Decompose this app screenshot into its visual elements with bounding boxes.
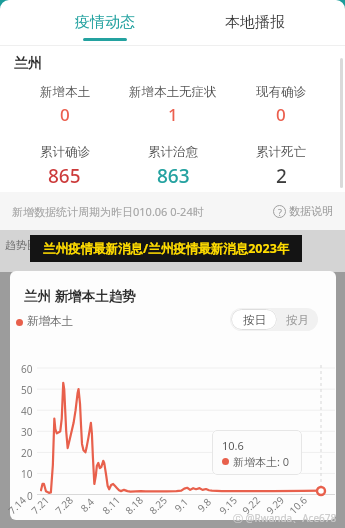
staticText: ⓒ @Rwanda、Ace678	[233, 511, 337, 525]
staticText: 兰州	[14, 55, 42, 73]
button[interactable]: 兰州疫情最新消息/兰州疫情最新消息2023年	[30, 235, 302, 262]
staticText: 8.18	[122, 493, 146, 517]
staticText: 8.25	[146, 493, 170, 517]
staticText: 0	[27, 489, 33, 503]
staticText: 7.21	[28, 493, 52, 517]
staticText: 30	[21, 425, 33, 439]
staticText: 10.6	[286, 493, 310, 517]
staticText: 7.28	[52, 493, 76, 517]
staticText: 10	[21, 467, 33, 481]
staticText: 20	[21, 446, 33, 460]
staticText: 1	[168, 103, 178, 126]
button[interactable]: ?	[273, 204, 333, 218]
staticText: 趋势图数据更新至前一日	[5, 238, 126, 252]
staticText: 50	[21, 383, 33, 397]
staticText: 数据说明	[289, 204, 333, 218]
staticText: 按日	[243, 313, 266, 327]
staticText: 865	[48, 163, 81, 189]
staticText: 新增本土无症状	[129, 84, 217, 100]
staticText: ?	[278, 206, 282, 218]
staticText: 0	[60, 103, 70, 126]
staticText: 9.1	[171, 494, 192, 515]
staticText: 兰州疫情最新消息/兰州疫情最新消息2023年	[43, 240, 290, 257]
button[interactable]: 按月	[277, 308, 318, 331]
staticText: 7.14	[5, 493, 29, 517]
staticText: 9.15	[216, 493, 240, 517]
staticText: 863	[157, 163, 190, 189]
staticText: 兰州 新增本土趋势	[24, 287, 136, 305]
staticText: 新增本土: 0	[233, 454, 290, 469]
staticText: 现有确诊	[256, 84, 306, 100]
staticText: 新增本土	[27, 314, 73, 328]
staticText: 疫情动态	[75, 13, 135, 32]
staticText: 9.29	[263, 493, 287, 517]
staticText: 0	[276, 103, 286, 126]
staticText: 8.4	[77, 494, 98, 515]
staticText: 新增本土	[40, 84, 90, 100]
staticText: 8.11	[99, 493, 123, 517]
staticText: 按月	[286, 313, 309, 327]
button[interactable]: 按日	[231, 309, 277, 330]
staticText: 60	[21, 362, 33, 376]
staticText: 2	[276, 163, 287, 189]
staticText: 10.6	[222, 438, 244, 453]
staticText: 40	[21, 404, 33, 418]
staticText: 新增数据统计周期为昨日010.06 0-24时	[12, 204, 204, 219]
button[interactable]: 疫情动态	[30, 0, 180, 45]
staticText: 本地播报	[225, 13, 285, 32]
staticText: 9.22	[239, 493, 263, 517]
staticText: 累计死亡	[256, 144, 306, 160]
staticText: 累计确诊	[40, 144, 90, 160]
button[interactable]: 本地播报	[180, 0, 330, 45]
staticText: 9.8	[194, 494, 215, 515]
staticText: 累计治愈	[148, 144, 198, 160]
